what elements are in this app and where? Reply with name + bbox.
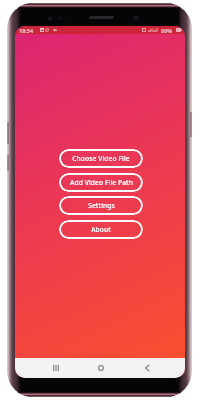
button[interactable]: About xyxy=(59,220,143,239)
staticText: About xyxy=(91,225,111,234)
button[interactable]: Settings xyxy=(59,196,143,215)
staticText: Settings xyxy=(88,201,115,210)
button[interactable]: Home xyxy=(86,358,116,378)
staticText: 60% xyxy=(161,27,173,34)
button[interactable]: Back xyxy=(131,358,161,378)
button[interactable]: Add Video File Path xyxy=(59,173,143,192)
button[interactable]: Choose Video File xyxy=(59,149,143,168)
staticText: 18:54 xyxy=(19,27,34,34)
staticText: Choose Video File xyxy=(72,154,130,163)
button[interactable]: Recent apps xyxy=(41,358,71,378)
staticText: Add Video File Path xyxy=(70,178,133,187)
